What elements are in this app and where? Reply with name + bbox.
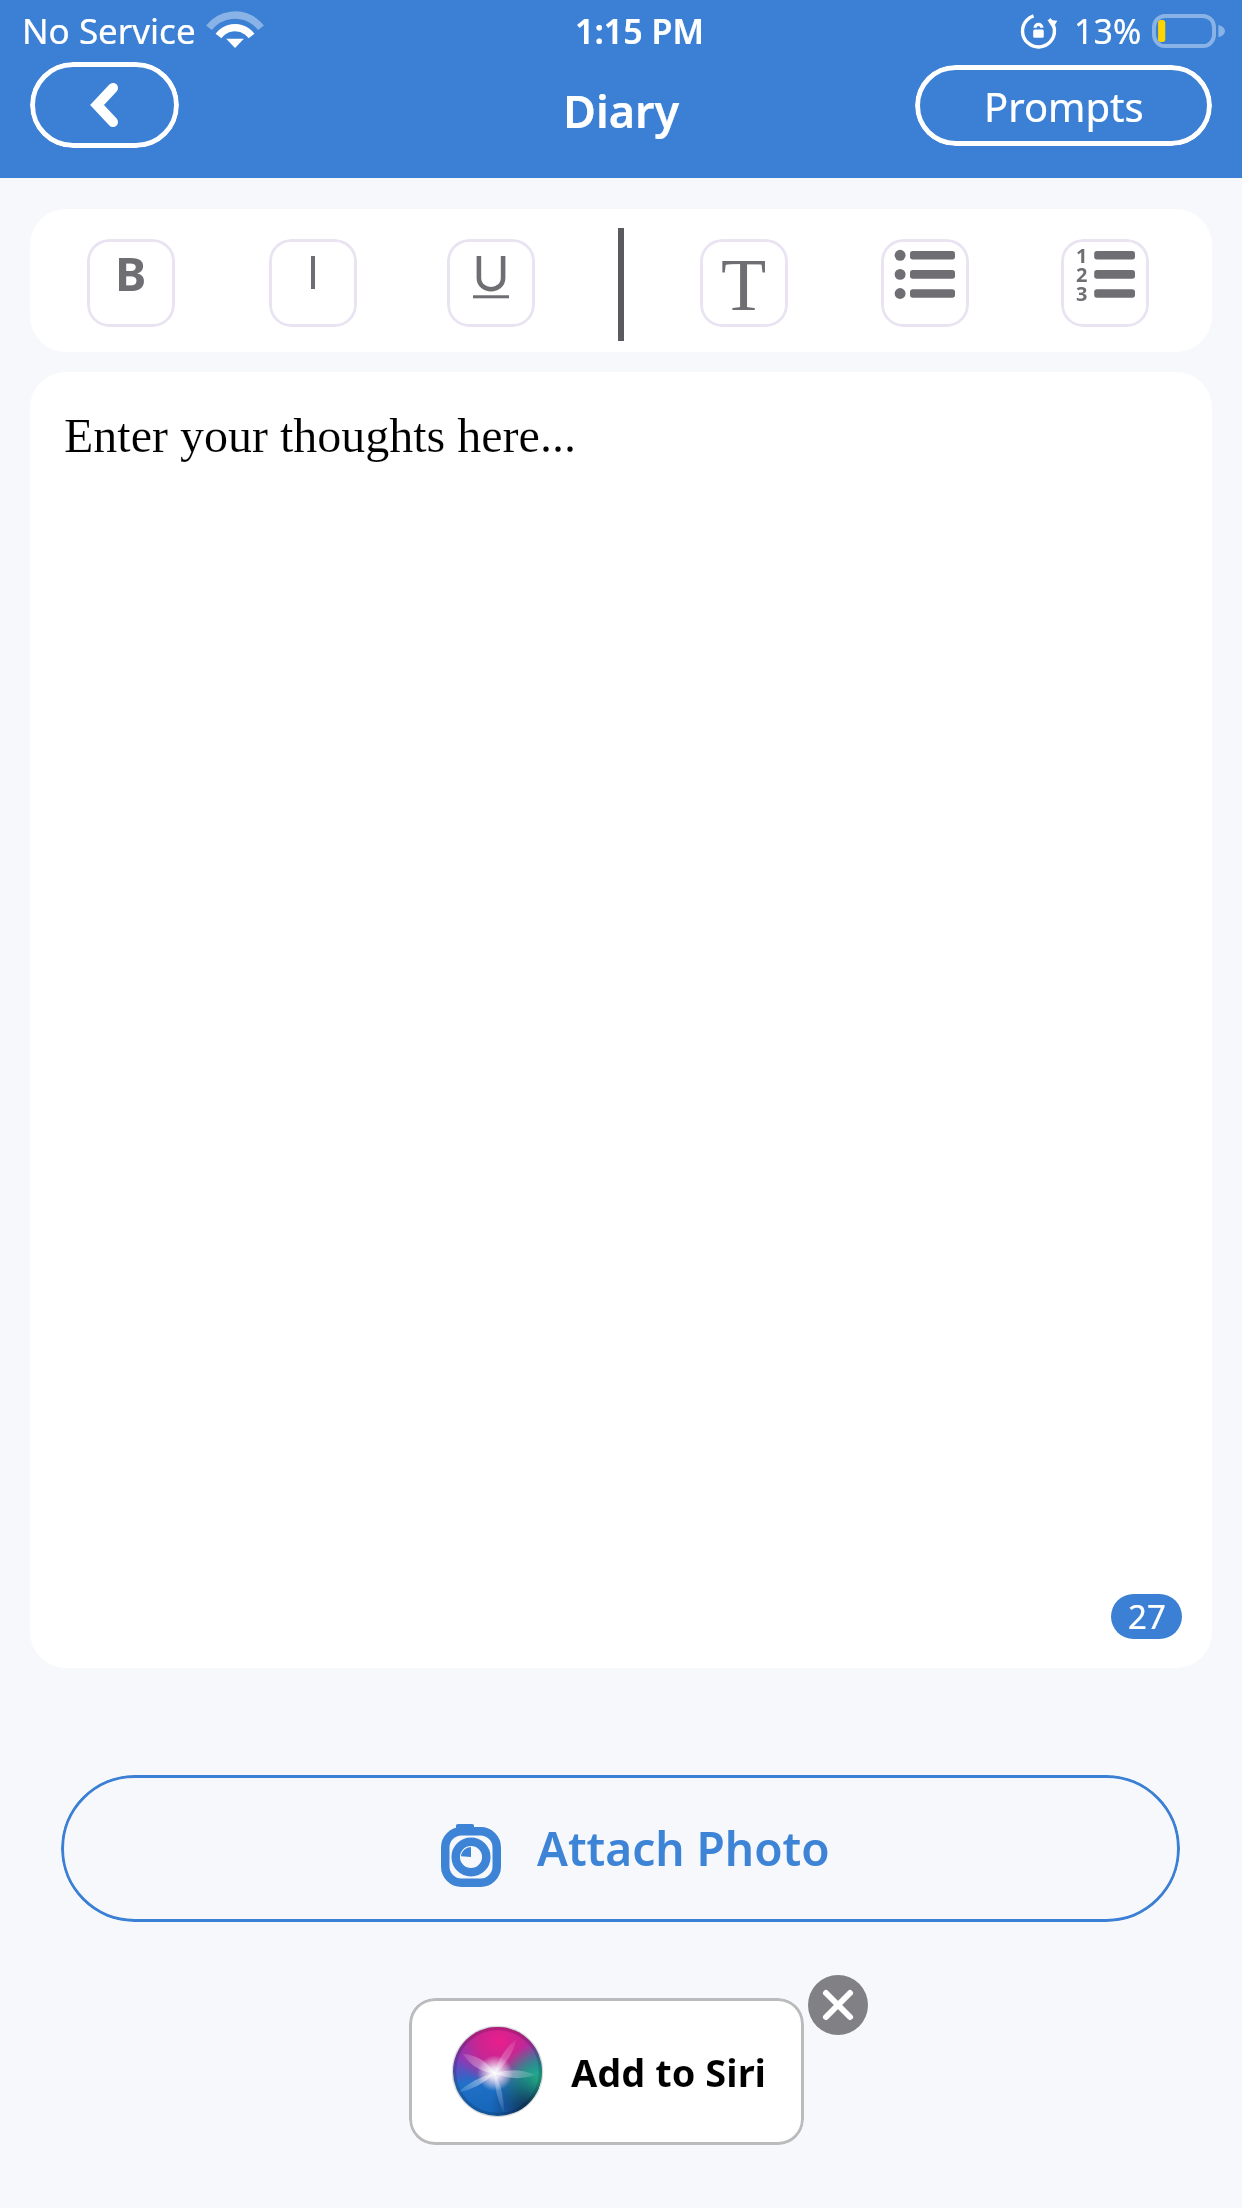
staticText: Add to Siri [571, 2046, 766, 2098]
button[interactable]: Prompts [915, 65, 1212, 146]
staticText: No Service [22, 7, 196, 55]
staticText: 1:15 PM [575, 8, 705, 54]
button[interactable]: Text style [700, 239, 788, 327]
button[interactable]: Underline [447, 239, 535, 327]
staticText: 3 [1076, 280, 1088, 307]
staticText: Attach Photo [537, 1817, 830, 1880]
staticText: Prompts [984, 79, 1144, 133]
button[interactable]: Numbered list [1061, 239, 1149, 327]
staticText: Diary [563, 80, 680, 141]
staticText: B [115, 241, 147, 305]
button[interactable]: Italic [269, 239, 357, 327]
button[interactable]: Bold [87, 239, 175, 327]
staticText: 27 [1128, 1594, 1166, 1639]
staticText: 2 [1076, 261, 1088, 288]
button[interactable]: Dismiss [808, 1975, 868, 2035]
staticText: Enter your thoughts here... [64, 409, 576, 462]
button[interactable]: Attach Photo [61, 1775, 1180, 1922]
staticText: T [721, 244, 767, 326]
button[interactable]: Add to Siri [409, 1998, 804, 2145]
button[interactable]: Back [30, 62, 179, 148]
staticText: 1 [1076, 242, 1088, 269]
button[interactable]: Bulleted list [881, 239, 969, 327]
staticText: 13% [1074, 8, 1142, 54]
